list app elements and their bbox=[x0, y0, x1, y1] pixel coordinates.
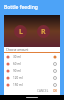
staticText: R bbox=[41, 27, 46, 37]
button[interactable]: CANCEL bbox=[35, 89, 51, 93]
staticText: Bottle feeding bbox=[4, 4, 38, 11]
button[interactable]: R bbox=[37, 25, 50, 38]
staticText: 90 ml bbox=[13, 69, 21, 73]
button[interactable]: 30 ml bbox=[4, 53, 60, 60]
staticText: Choose amount bbox=[6, 48, 29, 52]
staticText: L bbox=[19, 27, 23, 37]
staticText: 120 ml bbox=[13, 76, 23, 80]
staticText: 60 ml bbox=[13, 62, 21, 66]
button[interactable]: 60 ml bbox=[4, 60, 60, 67]
staticText: 150 ml bbox=[13, 83, 23, 87]
staticText: 30 ml bbox=[13, 55, 21, 59]
button[interactable]: OK bbox=[51, 89, 60, 93]
button[interactable]: 120 ml bbox=[4, 74, 60, 81]
button[interactable]: 150 ml bbox=[4, 81, 60, 88]
button[interactable]: L bbox=[14, 25, 27, 38]
button[interactable]: 90 ml bbox=[4, 67, 60, 74]
